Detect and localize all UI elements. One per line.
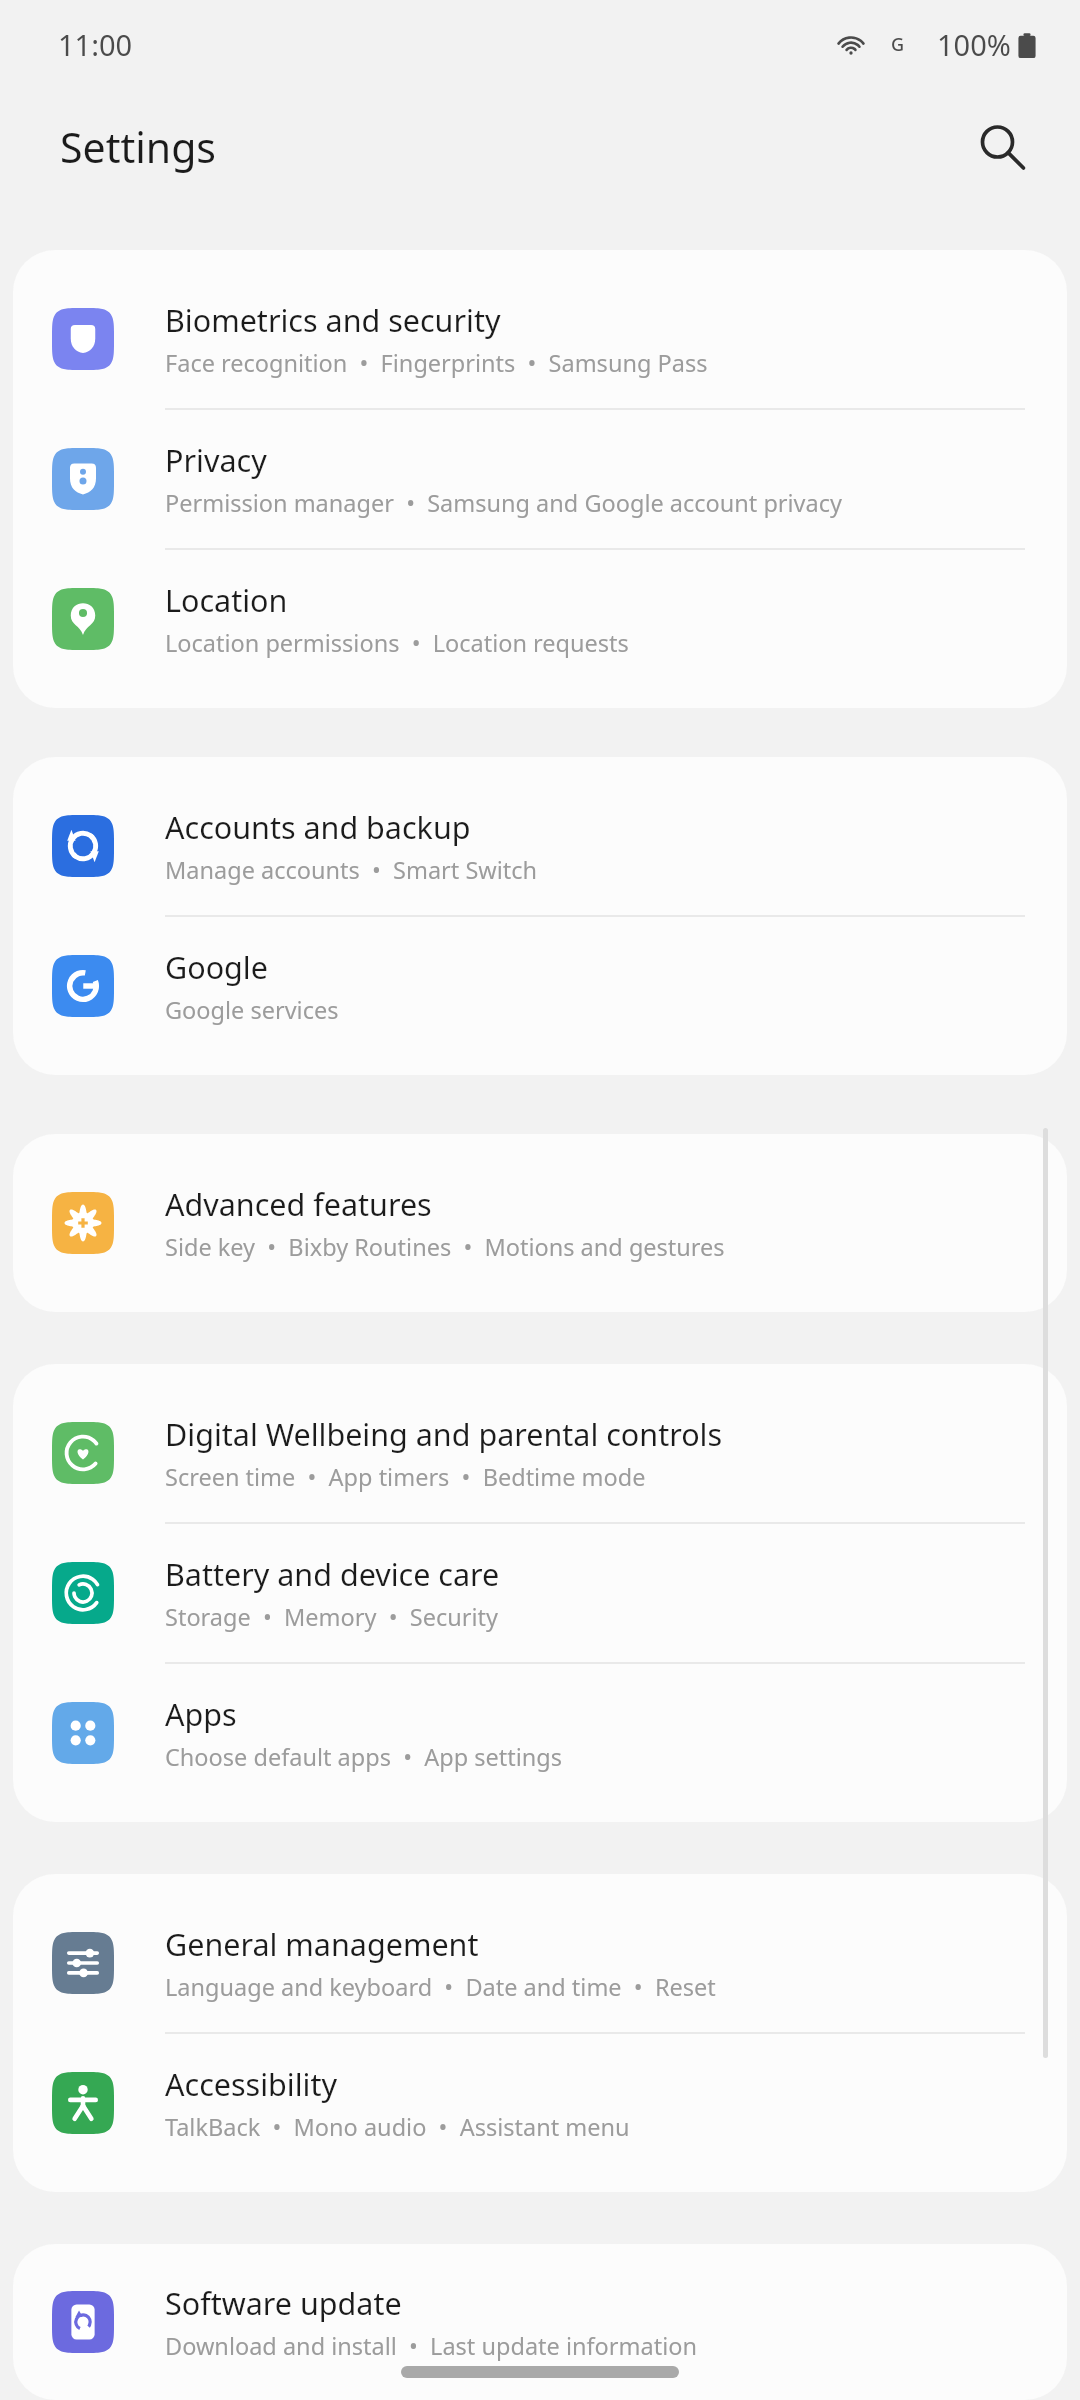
staticText: Digital Wellbeing and parental controls (165, 1413, 723, 1455)
button[interactable]: Search (962, 107, 1042, 187)
staticText: Location permissions • Location requests (165, 627, 629, 659)
staticText: 11:00 (58, 25, 133, 64)
staticText: Advanced features (165, 1183, 432, 1225)
button[interactable]: Biometrics and security (13, 270, 1067, 410)
button[interactable]: Battery and device care (13, 1524, 1067, 1664)
staticText: Choose default apps • App settings (165, 1741, 563, 1773)
staticText: Biometrics and security (165, 299, 501, 341)
staticText: Manage accounts • Smart Switch (165, 854, 538, 886)
staticText: Accessibility (165, 2063, 337, 2105)
staticText: Apps (165, 1693, 237, 1735)
staticText: Privacy (165, 439, 267, 481)
button[interactable]: Advanced features (13, 1154, 1067, 1292)
staticText: Settings (60, 119, 217, 175)
staticText: Software update (165, 2282, 402, 2324)
staticText: 100% (937, 25, 1011, 64)
staticText: Download and install • Last update infor… (165, 2330, 697, 2362)
staticText: Location (165, 579, 288, 621)
staticText: TalkBack • Mono audio • Assistant menu (165, 2111, 630, 2143)
button[interactable]: Apps (13, 1664, 1067, 1802)
staticText: Face recognition • Fingerprints • Samsun… (165, 347, 708, 379)
button[interactable]: General management (13, 1894, 1067, 2034)
button[interactable]: Google (13, 917, 1067, 1055)
staticText: Permission manager • Samsung and Google … (165, 487, 843, 519)
button[interactable]: Privacy (13, 410, 1067, 550)
staticText: General management (165, 1923, 479, 1965)
button[interactable]: Digital Wellbeing and parental controls (13, 1384, 1067, 1524)
staticText: Battery and device care (165, 1553, 500, 1595)
staticText: Storage • Memory • Security (165, 1601, 498, 1633)
staticText: Google services (165, 994, 339, 1026)
button[interactable]: Location (13, 550, 1067, 688)
staticText: Accounts and backup (165, 806, 471, 848)
button[interactable]: Accessibility (13, 2034, 1067, 2172)
staticText: Google (165, 946, 268, 988)
staticText: Language and keyboard • Date and time • … (165, 1971, 716, 2003)
staticText: Screen time • App timers • Bedtime mode (165, 1461, 646, 1493)
button[interactable]: Accounts and backup (13, 777, 1067, 917)
staticText: Side key • Bixby Routines • Motions and … (165, 1231, 725, 1263)
button[interactable]: Software update (13, 2264, 1067, 2380)
staticText: G (891, 32, 905, 57)
